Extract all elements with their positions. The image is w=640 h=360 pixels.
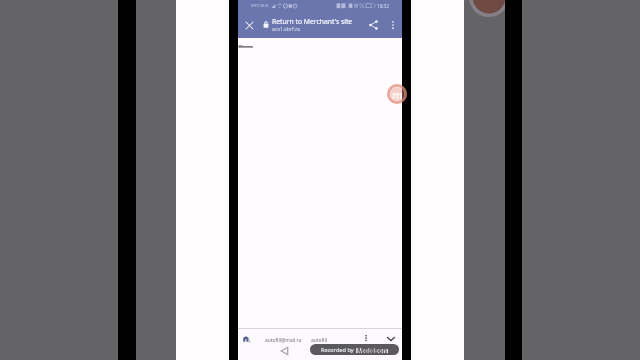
staticText: Recorded by: [321, 346, 356, 354]
staticText: 18:32: [377, 3, 389, 9]
button[interactable]: Mobizen recorder: [387, 84, 407, 104]
staticText: MTS RUS: [251, 3, 269, 9]
staticText: autofill@mail.ru: [265, 337, 302, 344]
staticText: Mobizen: [357, 346, 388, 355]
button[interactable]: Back: [277, 344, 291, 358]
button[interactable]: Recorded by Mobizen: [310, 344, 399, 355]
staticText: autofill: [311, 337, 327, 344]
button[interactable]: Suggestion options: [360, 332, 372, 344]
button[interactable]: More options: [385, 14, 400, 36]
staticText: Mobizen: [356, 345, 389, 355]
button[interactable]: Share: [364, 14, 383, 36]
staticText: Return to Merchant's site: [272, 17, 360, 26]
button[interactable]: Close: [239, 13, 260, 38]
staticText: acs1.sbrf.ru: [272, 25, 301, 32]
staticText: m: [392, 87, 403, 102]
button[interactable]: Collapse suggestions: [385, 333, 397, 345]
